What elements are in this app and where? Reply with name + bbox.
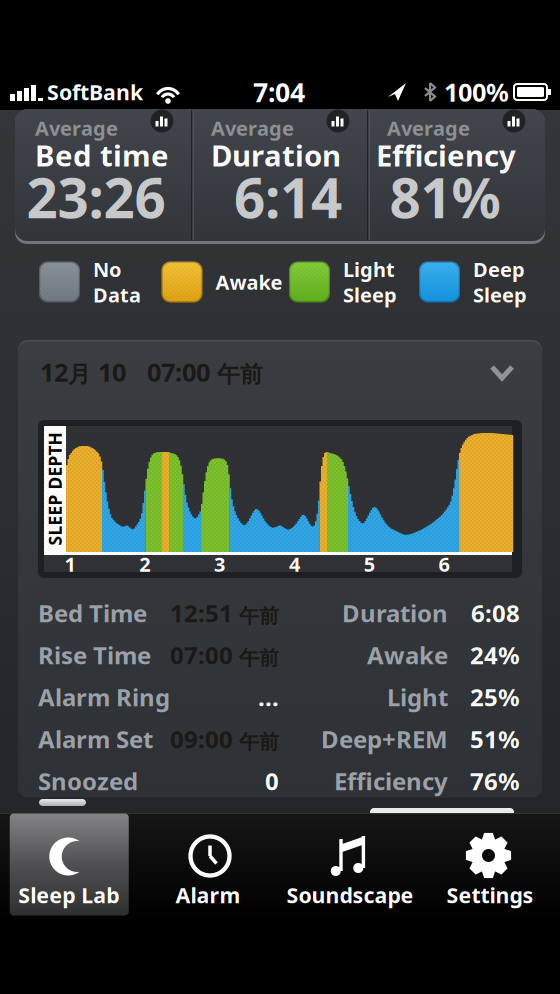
staticText: Data (93, 281, 141, 308)
button[interactable]: Show statistics chart (326, 109, 349, 132)
staticText: Average (387, 115, 470, 141)
staticText: 09:00 午前 (170, 723, 279, 755)
staticText: Alarm Ring (38, 681, 170, 713)
staticText: 12:51 午前 (170, 597, 279, 629)
button[interactable]: Sleep Lab (10, 813, 129, 915)
staticText: Bed time (35, 135, 169, 174)
staticText: 76% (470, 765, 520, 797)
button[interactable]: Show statistics chart (150, 109, 173, 132)
staticText: 4 (289, 551, 300, 577)
staticText: 7:04 (253, 74, 305, 110)
staticText: Deep+REM (321, 723, 448, 755)
staticText: Average (211, 115, 294, 141)
staticText: Sleep Lab (18, 881, 119, 909)
staticText: 6:08 (471, 597, 520, 629)
staticText: Light (343, 256, 395, 282)
staticText: 12月 10 07:00 午前 (40, 355, 263, 389)
staticText: 6:14 (234, 161, 342, 233)
button[interactable]: Soundscape (280, 813, 420, 920)
staticText: Efficiency (376, 135, 516, 174)
staticText: 0 (265, 765, 279, 797)
staticText: Awake (215, 269, 282, 295)
staticText: 6 (438, 551, 449, 577)
staticText: Rise Time (38, 639, 151, 671)
staticText: Awake (367, 639, 448, 671)
staticText: SLEEP DEPTH (0, 477, 111, 500)
staticText: Light (387, 681, 448, 713)
staticText: 5 (364, 551, 375, 577)
staticText: 07:00 午前 (170, 639, 279, 671)
staticText: 3 (214, 551, 225, 577)
staticText: 1 (64, 551, 75, 577)
staticText: Deep (473, 256, 525, 282)
staticText: Duration (342, 597, 448, 629)
staticText: Sleep (343, 281, 397, 308)
staticText: 23:26 (26, 161, 165, 233)
staticText: Settings (446, 881, 533, 909)
staticText: No (93, 256, 122, 282)
button[interactable]: Alarm (140, 813, 280, 920)
staticText: Average (35, 115, 118, 141)
staticText: 24% (470, 639, 520, 671)
staticText: SoftBank (47, 78, 143, 106)
staticText: Efficiency (334, 765, 448, 797)
staticText: Duration (211, 135, 341, 174)
staticText: Snoozed (38, 765, 138, 797)
staticText: 100% (444, 75, 509, 109)
staticText: 81% (389, 161, 500, 233)
staticText: Sleep (473, 281, 527, 308)
staticText: 51% (470, 723, 520, 755)
button[interactable]: Settings (420, 813, 560, 920)
staticText: ... (258, 681, 279, 713)
staticText: 25% (470, 681, 520, 713)
staticText: Bed Time (38, 597, 147, 629)
staticText: Alarm Set (38, 723, 153, 755)
staticText: Alarm (175, 881, 240, 909)
button[interactable]: 12月 10 07:00 午前 (18, 341, 542, 403)
staticText: Soundscape (286, 881, 413, 909)
button[interactable]: Show statistics chart (502, 109, 525, 132)
staticText: 2 (139, 551, 150, 577)
